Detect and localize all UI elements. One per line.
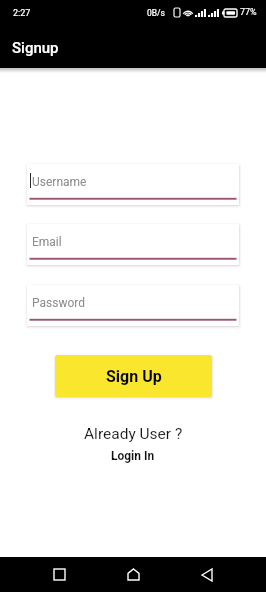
staticText: 2:27 [13, 8, 31, 19]
staticText: Sign Up [106, 367, 162, 386]
button[interactable]: Recent apps [22, 557, 96, 592]
button[interactable]: Sign Up [55, 355, 212, 397]
staticText: Password [32, 296, 86, 310]
staticText: Email [32, 235, 62, 249]
staticText: Username [32, 175, 87, 189]
staticText: Login In [111, 449, 155, 463]
staticText: Signup [12, 39, 59, 57]
staticText: Already User ? [84, 425, 183, 443]
button[interactable]: Back [170, 557, 244, 592]
button[interactable]: Login In [111, 449, 155, 463]
staticText: 0B/s [147, 8, 165, 18]
staticText: 77% [240, 7, 257, 18]
button[interactable]: Home [96, 557, 170, 592]
